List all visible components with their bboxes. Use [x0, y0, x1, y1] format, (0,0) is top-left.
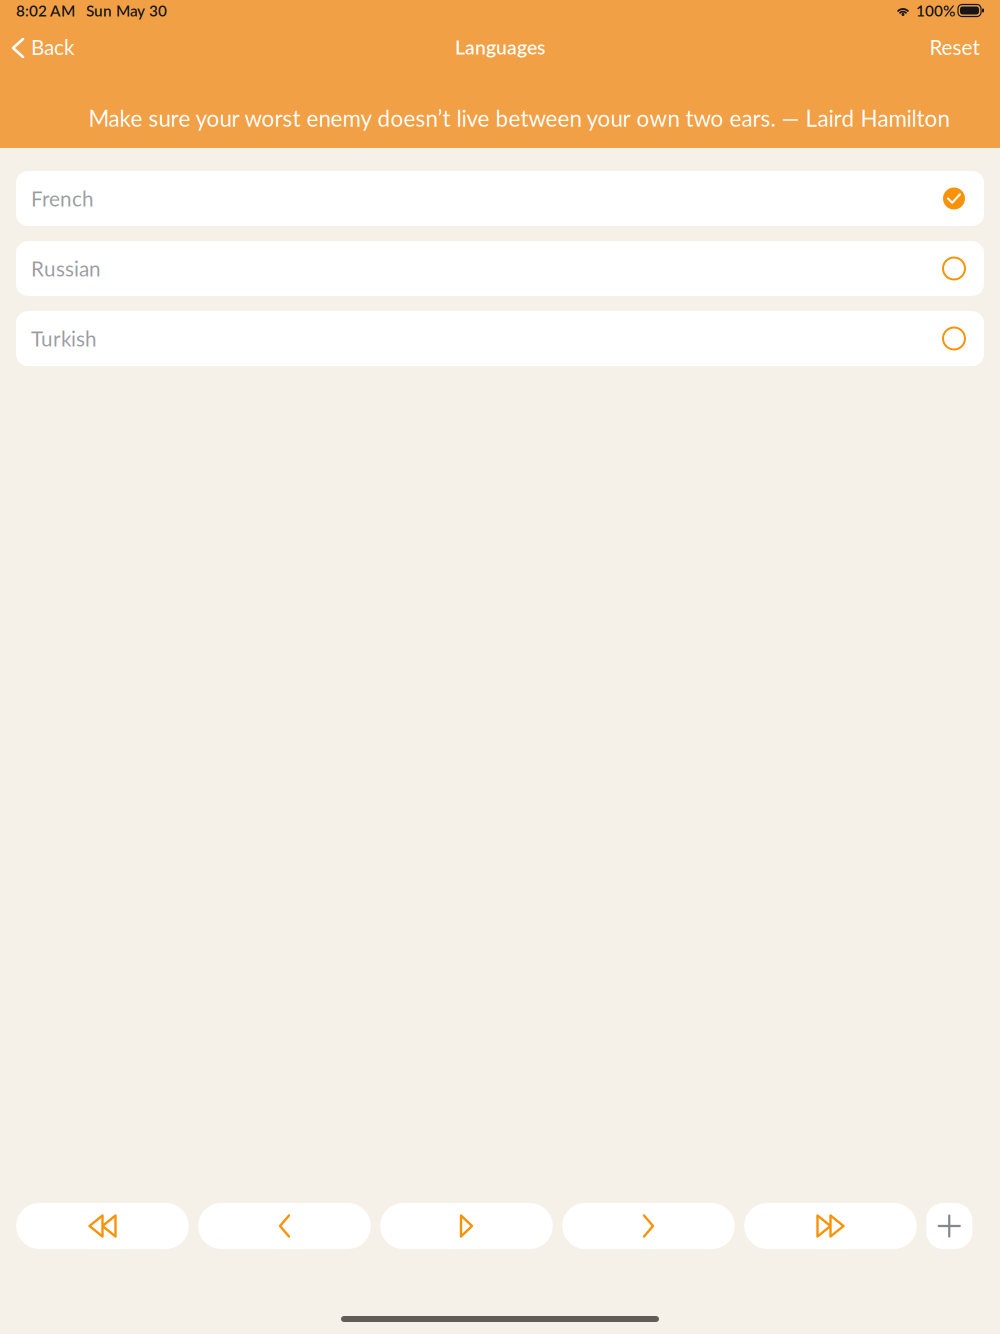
button[interactable]: Next: [562, 1203, 735, 1249]
staticText: Sun May 30: [86, 1, 167, 20]
staticText: Make sure your worst enemy doesn’t live …: [88, 105, 949, 131]
staticText: Russian: [31, 256, 101, 281]
button[interactable]: Play: [380, 1203, 553, 1249]
button[interactable]: Add: [926, 1203, 972, 1249]
staticText: Turkish: [31, 326, 97, 351]
button[interactable]: Previous: [198, 1203, 371, 1249]
staticText: 100%: [916, 1, 955, 20]
button[interactable]: Turkish: [16, 311, 984, 366]
button[interactable]: French: [16, 171, 984, 226]
staticText: Reset: [929, 35, 979, 59]
staticText: Languages: [455, 35, 545, 59]
staticText: French: [31, 186, 94, 211]
button[interactable]: Fast forward: [744, 1203, 917, 1249]
button[interactable]: Back: [0, 26, 86, 68]
button[interactable]: Rewind: [16, 1203, 189, 1249]
staticText: 8:02 AM: [16, 1, 75, 20]
staticText: Back: [31, 35, 74, 59]
button[interactable]: Russian: [16, 241, 984, 296]
button[interactable]: Reset: [915, 26, 1000, 68]
